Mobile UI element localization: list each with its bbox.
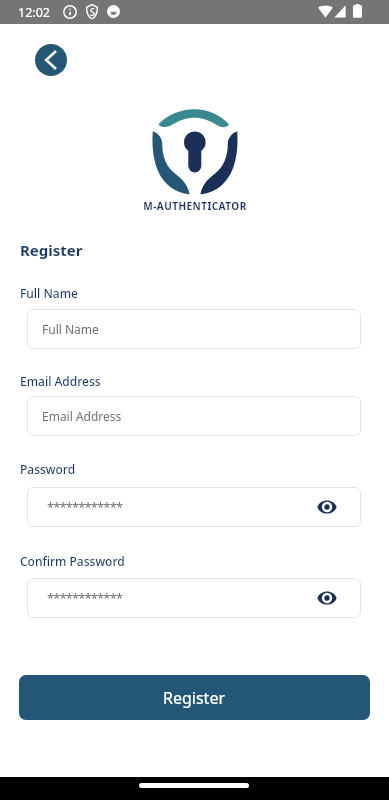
staticText: Full Name bbox=[42, 321, 99, 337]
staticText: Email Address bbox=[20, 373, 101, 389]
staticText: Full Name bbox=[20, 285, 78, 301]
staticText: Confirm Password bbox=[20, 553, 125, 569]
button[interactable]: Register bbox=[19, 675, 370, 720]
button[interactable]: Toggle password visibility bbox=[313, 493, 341, 521]
button[interactable]: Email Address bbox=[27, 396, 361, 436]
staticText: Register bbox=[20, 240, 83, 260]
button[interactable]: Back bbox=[35, 44, 67, 76]
staticText: ************ bbox=[47, 589, 123, 607]
staticText: 12:02 bbox=[18, 4, 50, 21]
staticText: M-AUTHENTICATOR bbox=[143, 199, 247, 213]
button[interactable]: Toggle password visibility bbox=[313, 584, 341, 612]
button[interactable]: ************ bbox=[27, 487, 361, 527]
button[interactable]: ************ bbox=[27, 578, 361, 618]
staticText: Register bbox=[163, 687, 226, 709]
staticText: ************ bbox=[47, 498, 123, 516]
button[interactable]: Full Name bbox=[27, 309, 361, 349]
staticText: Email Address bbox=[42, 408, 122, 424]
staticText: Password bbox=[20, 461, 76, 477]
